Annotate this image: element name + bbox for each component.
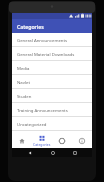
button[interactable]: General Announcements [12, 33, 92, 47]
staticText: General Announcements [17, 37, 68, 43]
button[interactable]: Studen [12, 89, 92, 103]
button[interactable]: Uncategorized [12, 117, 92, 131]
button[interactable]: Settings [52, 134, 72, 148]
staticText: Studen [17, 93, 32, 99]
staticText: Categories [17, 23, 44, 30]
button[interactable]: Back [25, 148, 34, 157]
button[interactable]: Home [12, 134, 32, 148]
staticText: Training Announcements [17, 107, 68, 113]
staticText: Categories [33, 142, 51, 147]
button[interactable]: Training Announcements [12, 103, 92, 117]
staticText: Media [17, 65, 30, 71]
staticText: Navlet [17, 79, 30, 85]
button[interactable]: Categories [32, 134, 52, 148]
staticText: Uncategorized [17, 121, 47, 127]
button[interactable]: General Material Downloads [12, 47, 92, 61]
staticText: General Material Downloads [17, 51, 75, 57]
button[interactable]: Recent apps [70, 148, 79, 157]
button[interactable]: Navlet [12, 75, 92, 89]
button[interactable]: Media [12, 61, 92, 75]
button[interactable]: Home [48, 148, 57, 157]
button[interactable]: About [72, 134, 92, 148]
